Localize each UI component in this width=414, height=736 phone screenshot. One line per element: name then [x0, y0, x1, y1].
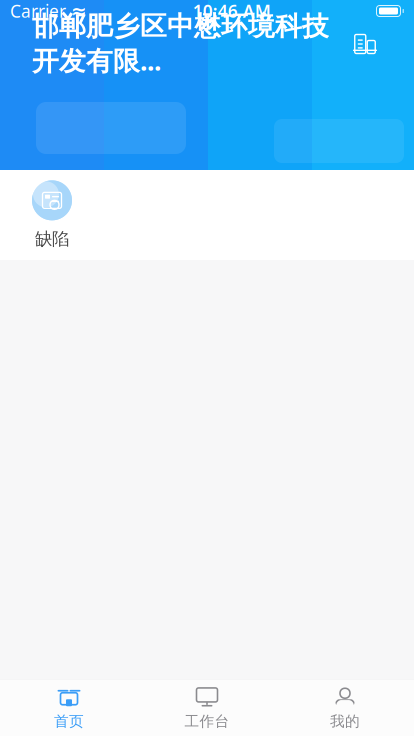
button[interactable]: 工作台 — [138, 680, 276, 736]
staticText: 我的 — [330, 712, 360, 730]
staticText: 邯郸肥乡区中懋环境科技开发有限... — [32, 10, 329, 78]
staticText: 工作台 — [184, 712, 229, 730]
staticText: 缺陷 — [35, 228, 69, 250]
staticText: 10:46 AM — [193, 0, 271, 22]
staticText: 首页 — [54, 712, 84, 730]
button[interactable]: 我的 — [276, 680, 414, 736]
button[interactable]: 切换企业 — [348, 27, 382, 61]
button[interactable]: 缺陷 — [12, 179, 92, 251]
staticText: Carrier — [10, 0, 66, 22]
staticText: ≈ — [71, 0, 87, 22]
button[interactable]: 首页 — [0, 680, 138, 736]
